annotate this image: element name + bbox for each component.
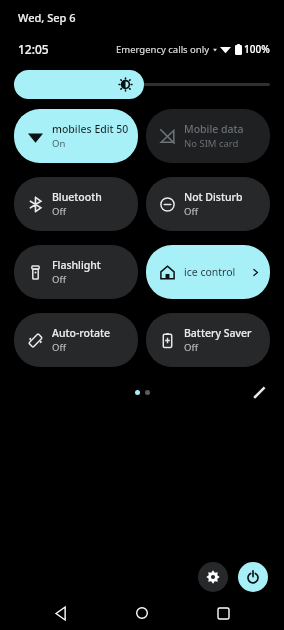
staticText: 100% [244, 42, 270, 56]
button[interactable]: Battery Saver [146, 313, 270, 367]
staticText: Wed, Sep 6 [18, 10, 76, 25]
staticText: On [52, 137, 66, 150]
staticText: 12:05 [18, 41, 49, 57]
button[interactable]: Settings [198, 562, 228, 592]
staticText: Off [52, 341, 66, 354]
button[interactable]: Back [41, 596, 81, 630]
staticText: Bluetooth [52, 190, 102, 204]
button[interactable] [14, 70, 270, 99]
staticText: Flashlight [52, 258, 101, 272]
staticText: No SIM card [184, 137, 239, 150]
staticText: Off [184, 205, 198, 218]
button[interactable]: Mobile data [146, 109, 270, 163]
staticText: ice control [184, 265, 251, 279]
button[interactable]: Flashlight [14, 245, 138, 299]
staticText: Emergency calls only [116, 43, 210, 56]
button[interactable]: ice control [146, 245, 270, 299]
button[interactable]: Bluetooth [14, 177, 138, 231]
staticText: Off [52, 273, 66, 286]
staticText: Not Disturb [184, 190, 243, 204]
button[interactable]: mobiles Edit 50 [14, 109, 138, 163]
button[interactable]: Recents [203, 596, 243, 630]
staticText: Off [52, 205, 66, 218]
staticText: Off [184, 341, 198, 354]
button[interactable]: Not Disturb [146, 177, 270, 231]
button[interactable]: Power [238, 562, 268, 592]
button[interactable]: Auto-rotate [14, 313, 138, 367]
staticText: Battery Saver [184, 326, 252, 340]
staticText: mobiles Edit 50 [52, 122, 129, 136]
staticText: Auto-rotate [52, 326, 110, 340]
staticText: Mobile data [184, 122, 244, 136]
button[interactable]: Home [122, 596, 162, 630]
button[interactable]: Edit tiles [248, 381, 270, 403]
